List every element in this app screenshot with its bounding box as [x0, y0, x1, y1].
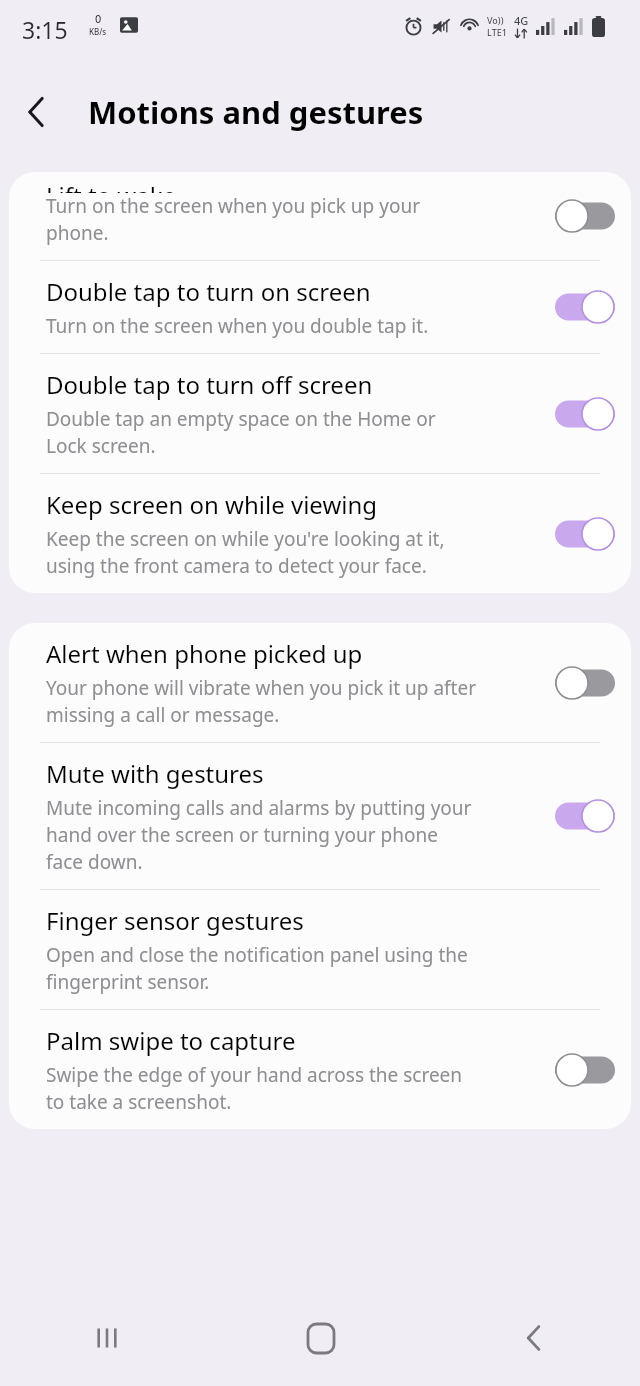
staticText: Mute with gestures	[46, 757, 264, 790]
staticText: Keep screen on while viewing	[46, 488, 378, 521]
button[interactable]: Double tap to turn on screen	[9, 261, 631, 353]
staticText: Keep the screen on while you're looking …	[46, 526, 445, 579]
button[interactable]: Palm swipe to capture	[9, 1010, 631, 1129]
button[interactable]: Toggle on	[555, 799, 615, 833]
staticText: Finger sensor gestures	[46, 904, 304, 937]
button[interactable]: Mute with gestures	[9, 743, 631, 889]
button[interactable]: Keep screen on while viewing	[9, 474, 631, 593]
staticText: Motions and gestures	[88, 91, 424, 133]
staticText: Double tap to turn on screen	[46, 275, 371, 308]
staticText: Open and close the notification panel us…	[46, 942, 468, 995]
button[interactable]: Toggle off	[555, 666, 615, 700]
staticText: Alert when phone picked up	[46, 637, 363, 670]
button[interactable]: Toggle on	[555, 517, 615, 551]
staticText: LTE1	[487, 26, 507, 38]
staticText: Turn on the screen when you double tap i…	[46, 313, 429, 339]
staticText: 4G	[514, 13, 529, 28]
button[interactable]: Finger sensor gestures	[9, 890, 631, 1009]
staticText: 3:15	[22, 14, 68, 45]
staticText: Your phone will vibrate when you pick it…	[46, 675, 477, 728]
button[interactable]: Toggle off	[555, 199, 615, 233]
button[interactable]: Toggle off	[555, 1053, 615, 1087]
staticText: KB/s	[89, 26, 107, 37]
staticText: 0	[95, 11, 102, 26]
button[interactable]: Back	[427, 1290, 640, 1386]
staticText: Swipe the edge of your hand across the s…	[46, 1062, 463, 1115]
button[interactable]: Back	[0, 76, 72, 148]
button[interactable]: Toggle on	[555, 397, 615, 431]
button[interactable]: Lift to wake	[9, 172, 631, 260]
staticText: Mute incoming calls and alarms by puttin…	[46, 795, 472, 875]
button[interactable]: Recents	[0, 1290, 214, 1386]
button[interactable]: Toggle on	[555, 290, 615, 324]
button[interactable]: Home	[214, 1290, 427, 1386]
staticText: Double tap an empty space on the Home or…	[46, 406, 436, 459]
staticText: Double tap to turn off screen	[46, 368, 373, 401]
staticText: Vo))	[487, 14, 504, 26]
button[interactable]: Alert when phone picked up	[9, 623, 631, 742]
staticText: Lift to wake	[46, 179, 177, 193]
staticText: Turn on the screen when you pick up your…	[46, 193, 420, 246]
button[interactable]: Double tap to turn off screen	[9, 354, 631, 473]
staticText: Palm swipe to capture	[46, 1024, 296, 1057]
